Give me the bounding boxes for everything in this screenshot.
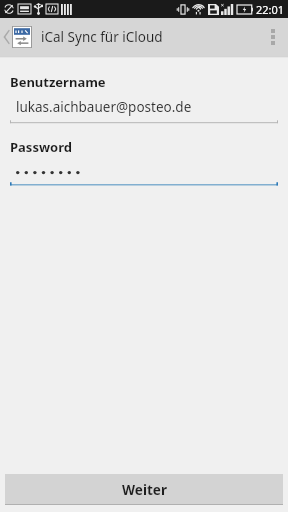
staticText: lukas.aichbauer@posteo.de bbox=[16, 98, 192, 116]
staticText: iCal Sync für iCloud bbox=[41, 28, 163, 46]
button[interactable]: More options bbox=[258, 18, 288, 56]
button[interactable]: Navigate up bbox=[0, 26, 34, 48]
staticText: Weiter bbox=[122, 481, 167, 499]
button[interactable] bbox=[0, 166, 288, 188]
button[interactable]: lukas.aichbauer@posteo.de bbox=[0, 98, 288, 126]
button[interactable]: Weiter bbox=[5, 474, 283, 505]
staticText: Password bbox=[10, 138, 72, 156]
staticText: 22:01 bbox=[256, 2, 285, 17]
staticText: Benutzername bbox=[10, 73, 106, 91]
